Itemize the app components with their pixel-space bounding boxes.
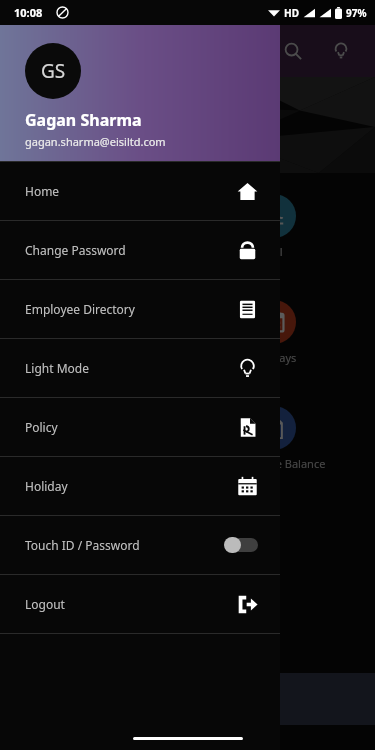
button[interactable]: Light Mode <box>0 339 280 397</box>
staticText: Touch ID / Password <box>25 537 140 553</box>
button[interactable]: Tips <box>327 37 355 65</box>
staticText: gagan.sharma@eisiltd.com <box>25 134 166 149</box>
staticText: 10:08 <box>14 5 43 20</box>
staticText: Holiday <box>25 478 68 494</box>
button[interactable]: Touch ID / Password <box>0 516 280 574</box>
button[interactable]: Travel <box>252 194 375 259</box>
button[interactable]: Leave Balance <box>252 406 375 471</box>
button[interactable]: Logout <box>0 575 280 633</box>
staticText: Gagan Sharma <box>25 109 142 131</box>
staticText: Holidays <box>252 350 297 365</box>
staticText: Home <box>25 183 60 199</box>
staticText: Light Mode <box>25 360 89 376</box>
staticText: Change Password <box>25 242 126 258</box>
button[interactable]: Home <box>0 162 280 220</box>
button[interactable]: Employee Directory <box>0 280 280 338</box>
staticText: Employee Directory <box>25 301 135 317</box>
button[interactable]: Policy <box>0 398 280 456</box>
button[interactable]: Holidays <box>252 300 375 365</box>
button[interactable]: Change Password <box>0 221 280 279</box>
staticText: Logout <box>25 596 65 612</box>
staticText: Leave Balance <box>252 456 326 471</box>
staticText: Policy <box>25 419 58 435</box>
button[interactable]: Holiday <box>0 457 280 515</box>
staticText: HD <box>284 6 299 20</box>
staticText: GS <box>41 58 66 84</box>
staticText: Travel <box>252 244 283 259</box>
staticText: 97% <box>346 6 367 20</box>
button[interactable]: Search <box>279 37 307 65</box>
